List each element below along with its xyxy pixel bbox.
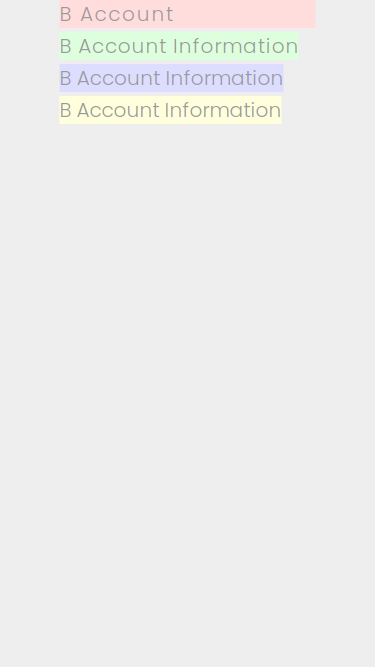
staticText: B Account Information	[59, 32, 298, 60]
staticText: B Account Information	[59, 64, 283, 92]
staticText: B Account Information	[59, 0, 315, 28]
staticText: B Account Information	[59, 96, 281, 124]
